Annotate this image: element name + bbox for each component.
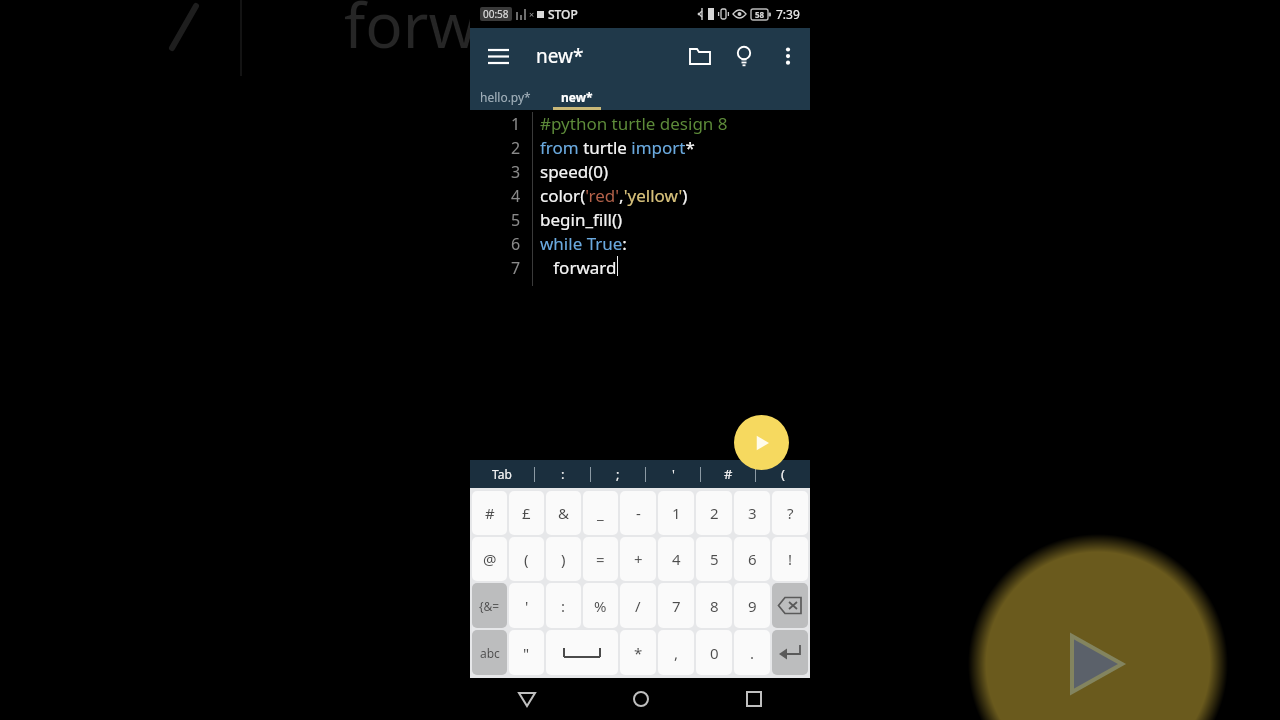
staticText: forward xyxy=(540,256,617,279)
staticText: new* xyxy=(536,43,584,69)
button[interactable]: # xyxy=(472,491,507,535)
button[interactable]: Back xyxy=(470,678,584,720)
staticText: + xyxy=(634,549,643,569)
button[interactable]: ( xyxy=(756,460,810,488)
staticText: 6 xyxy=(511,233,521,255)
button[interactable]: Hints xyxy=(722,34,766,78)
button[interactable]: 5 xyxy=(696,537,732,581)
staticText: new* xyxy=(561,89,593,105)
button[interactable]: * xyxy=(620,630,656,675)
button[interactable]: 9 xyxy=(734,583,770,628)
staticText: 6 xyxy=(748,549,757,569)
staticText: - xyxy=(636,503,641,523)
staticText: #python turtle design 8 xyxy=(540,112,728,135)
button[interactable]: @ xyxy=(472,537,507,581)
staticText: 4 xyxy=(511,185,521,207)
button[interactable]: _ xyxy=(583,491,618,535)
staticText: 8 xyxy=(710,596,719,616)
staticText: ? xyxy=(787,503,794,523)
button[interactable]: Tab xyxy=(470,460,534,488)
staticText: forw xyxy=(344,0,478,66)
button[interactable]: 0 xyxy=(696,630,732,675)
staticText: 7 xyxy=(511,257,521,279)
button[interactable]: Open file xyxy=(678,34,722,78)
button[interactable]: hello.py* xyxy=(470,84,541,110)
staticText: ( xyxy=(524,549,529,569)
button[interactable]: 1 xyxy=(658,491,694,535)
button[interactable]: 4 xyxy=(658,537,694,581)
button[interactable]: new* xyxy=(553,84,601,110)
staticText: # xyxy=(724,465,733,483)
staticText: / xyxy=(635,596,641,616)
staticText: 5 xyxy=(511,209,521,231)
staticText: while True: xyxy=(540,232,627,255)
button[interactable]: Run xyxy=(734,415,789,470)
button[interactable]: " xyxy=(509,630,544,675)
staticText: = xyxy=(596,549,605,569)
button[interactable]: ) xyxy=(546,537,581,581)
staticText: 7:39 xyxy=(776,6,800,22)
staticText: , xyxy=(674,643,679,663)
button[interactable]: + xyxy=(620,537,656,581)
staticText: : xyxy=(561,465,565,483)
button[interactable]: 6 xyxy=(734,537,770,581)
button[interactable]: - xyxy=(620,491,656,535)
staticText: 0 xyxy=(710,643,719,663)
staticText: begin_fill() xyxy=(540,208,623,231)
button[interactable]: More options xyxy=(766,34,810,78)
button[interactable]: = xyxy=(583,537,618,581)
button[interactable]: Open navigation menu xyxy=(476,34,520,78)
button[interactable]: £ xyxy=(509,491,544,535)
button[interactable]: 2 xyxy=(696,491,732,535)
staticText: _ xyxy=(597,503,604,523)
button[interactable]: Home xyxy=(584,678,697,720)
button[interactable]: ' xyxy=(646,460,700,488)
staticText: 2 xyxy=(511,137,521,159)
button[interactable]: : xyxy=(546,583,581,628)
staticText: 1 xyxy=(672,503,681,523)
staticText: * xyxy=(634,643,643,663)
button[interactable]: {&= xyxy=(472,583,507,628)
button[interactable]: Space xyxy=(546,630,618,675)
button[interactable]: ; xyxy=(591,460,645,488)
button[interactable]: & xyxy=(546,491,581,535)
staticText: 58 xyxy=(755,9,765,20)
staticText: Tab xyxy=(492,466,512,482)
button[interactable]: ' xyxy=(509,583,544,628)
staticText: {&= xyxy=(479,598,500,614)
staticText: . xyxy=(750,643,755,663)
staticText: 2 xyxy=(710,503,719,523)
button[interactable]: 7 xyxy=(658,583,694,628)
button[interactable]: ( xyxy=(509,537,544,581)
staticText: color('red','yellow') xyxy=(540,184,688,207)
button[interactable]: . xyxy=(734,630,770,675)
button[interactable]: abc xyxy=(472,630,507,675)
staticText: ( xyxy=(781,465,785,483)
button[interactable]: 8 xyxy=(696,583,732,628)
staticText: : xyxy=(561,596,566,616)
button[interactable]: : xyxy=(535,460,590,488)
button[interactable]: 3 xyxy=(734,491,770,535)
staticText: ; xyxy=(616,465,620,483)
button[interactable]: Enter xyxy=(772,630,808,675)
button[interactable]: / xyxy=(620,583,656,628)
staticText: 00:58 xyxy=(483,7,509,21)
staticText: 1 xyxy=(511,113,521,135)
button[interactable]: % xyxy=(583,583,618,628)
button[interactable]: Delete xyxy=(772,583,808,628)
staticText: " xyxy=(523,643,530,663)
button[interactable]: ? xyxy=(772,491,808,535)
button[interactable]: # xyxy=(701,460,755,488)
button[interactable]: Recents xyxy=(697,678,810,720)
staticText: 7 xyxy=(672,596,681,616)
staticText: ' xyxy=(672,465,675,483)
button[interactable]: ! xyxy=(772,537,808,581)
staticText: STOP xyxy=(548,6,578,22)
staticText: £ xyxy=(522,503,531,523)
staticText: % xyxy=(594,596,607,616)
button[interactable]: , xyxy=(658,630,694,675)
staticText: 3 xyxy=(748,503,757,523)
staticText: abc xyxy=(480,645,500,661)
staticText: speed(0) xyxy=(540,160,609,183)
staticText: hello.py* xyxy=(480,89,531,105)
